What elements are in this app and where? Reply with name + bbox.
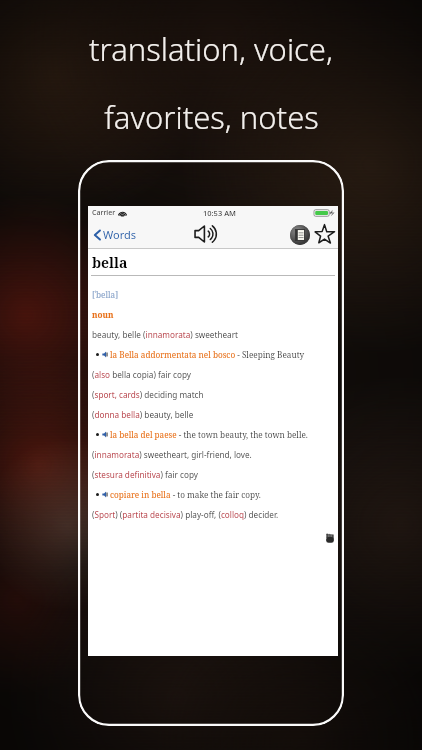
button[interactable]: Notes bbox=[289, 224, 311, 246]
button[interactable]: (sport, cards) deciding match bbox=[92, 384, 335, 404]
button[interactable]: (stesura definitiva) fair copy bbox=[92, 464, 335, 484]
staticText: translation, voice, bbox=[89, 28, 333, 70]
staticText: (stesura definitiva) fair copy bbox=[92, 469, 198, 480]
button[interactable]: (innamorata) sweetheart, girl-friend, lo… bbox=[92, 444, 335, 464]
staticText: noun bbox=[92, 309, 114, 320]
staticText: favorites, notes bbox=[104, 96, 319, 138]
staticText: (innamorata) sweetheart, girl-friend, lo… bbox=[92, 449, 252, 460]
button[interactable]: Words bbox=[92, 223, 139, 246]
staticText: Words bbox=[103, 227, 137, 242]
staticText: la Bella addormentata nel bosco - Sleepi… bbox=[110, 349, 305, 360]
staticText: copiare in bella - to make the fair copy… bbox=[110, 489, 261, 500]
staticText: la bella del paese - the town beauty, th… bbox=[110, 429, 308, 440]
staticText: [ˈbella] bbox=[92, 289, 119, 300]
button[interactable]: copiare in bella - to make the fair copy… bbox=[92, 484, 335, 504]
button[interactable]: la Bella addormentata nel bosco - Sleepi… bbox=[92, 344, 335, 364]
staticText: (donna bella) beauty, belle bbox=[92, 409, 194, 420]
staticText: bella bbox=[92, 253, 128, 272]
button[interactable]: (also bella copia) fair copy bbox=[92, 364, 335, 384]
staticText: (also bella copia) fair copy bbox=[92, 369, 191, 380]
button[interactable]: (donna bella) beauty, belle bbox=[92, 404, 335, 424]
staticText: 10:53 AM bbox=[203, 208, 236, 218]
staticText: (sport, cards) deciding match bbox=[92, 389, 204, 400]
staticText: beauty, belle (innamorata) sweetheart bbox=[92, 329, 239, 340]
button[interactable]: la bella del paese - the town beauty, th… bbox=[92, 424, 335, 444]
button[interactable]: Pronounce bbox=[191, 221, 223, 247]
staticText: (Sport) (partita decisiva) play-off, (co… bbox=[92, 509, 279, 520]
button[interactable]: (Sport) (partita decisiva) play-off, (co… bbox=[92, 504, 335, 524]
button[interactable]: Add to favorites bbox=[313, 223, 336, 246]
staticText: Carrier bbox=[92, 208, 116, 218]
button[interactable]: beauty, belle (innamorata) sweetheart bbox=[92, 324, 335, 344]
